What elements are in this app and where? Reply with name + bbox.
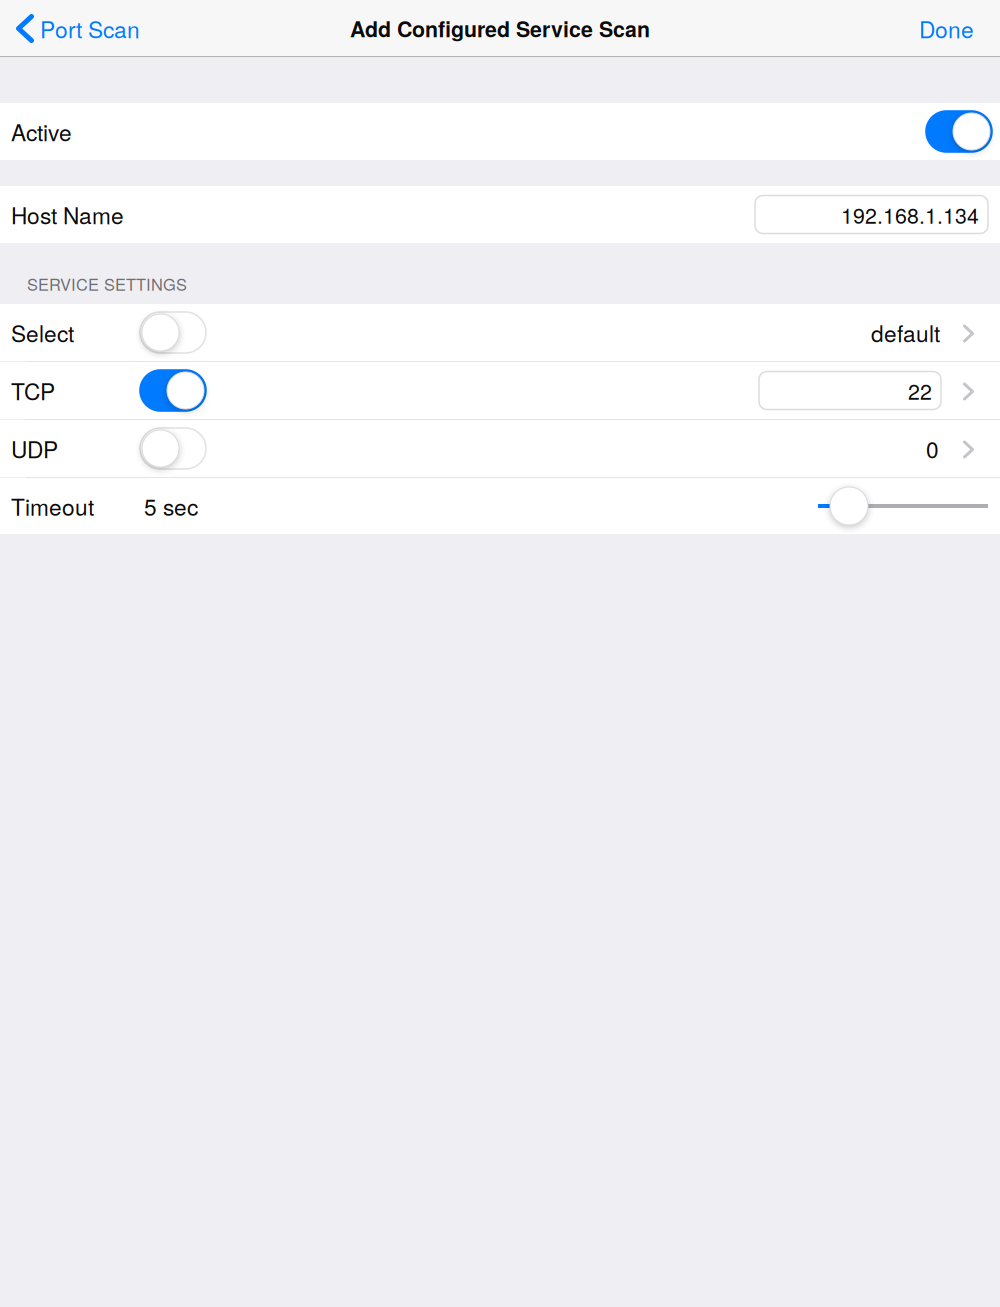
staticText: Active: [11, 115, 72, 148]
staticText: Done: [919, 12, 974, 45]
button[interactable]: TCP: [0, 362, 1000, 419]
button[interactable]: Active: [0, 103, 1000, 160]
staticText: default: [871, 316, 940, 349]
button[interactable]: Host Name: [0, 186, 1000, 243]
staticText: UDP: [11, 432, 58, 465]
button[interactable]: UDP: [0, 420, 1000, 477]
staticText: Timeout: [11, 490, 94, 522]
staticText: Add Configured Service Scan: [350, 13, 650, 44]
staticText: 0: [926, 432, 939, 465]
button[interactable]: Select: [0, 304, 1000, 361]
staticText: 5 sec: [144, 490, 198, 522]
staticText: Select: [11, 316, 74, 349]
button[interactable]: Port Scan: [0, 0, 140, 59]
staticText: Port Scan: [40, 12, 140, 45]
staticText: Host Name: [11, 198, 124, 231]
button[interactable]: Done: [919, 0, 1000, 59]
button[interactable]: Timeout: [0, 478, 1000, 534]
staticText: SERVICE SETTINGS: [27, 272, 187, 295]
staticText: 192.168.1.134: [841, 199, 979, 230]
staticText: TCP: [11, 374, 55, 407]
staticText: 22: [908, 375, 932, 406]
